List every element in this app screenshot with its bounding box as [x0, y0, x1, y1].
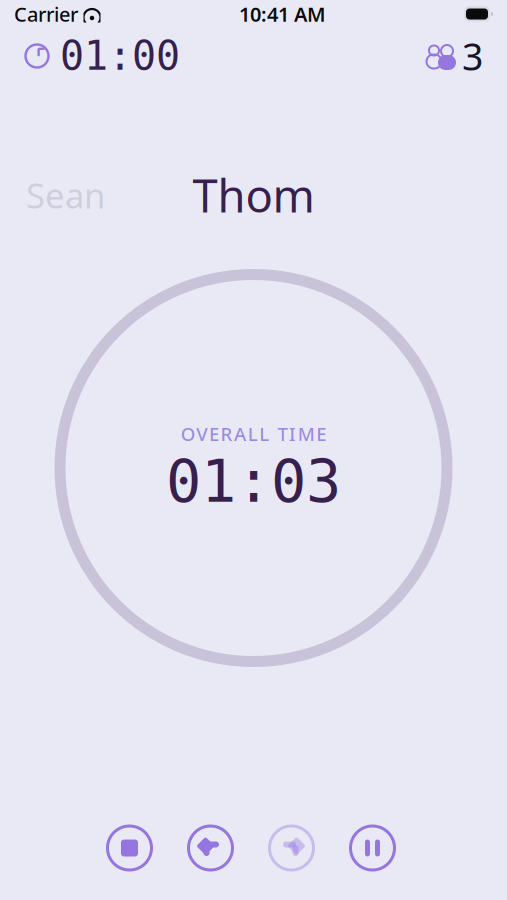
- staticText: 10:41 AM: [239, 1, 326, 27]
- button[interactable]: Previous: [186, 824, 234, 872]
- staticText: Sean: [26, 172, 105, 218]
- button[interactable]: Participants: [424, 31, 483, 81]
- staticText: 01:00: [60, 33, 180, 79]
- button[interactable]: Stop: [105, 824, 153, 872]
- staticText: Carrier: [14, 1, 78, 27]
- staticText: OVERALL TIME: [181, 421, 326, 446]
- button[interactable]: 01:00: [24, 33, 180, 79]
- staticText: Thom: [192, 165, 314, 225]
- staticText: 3: [462, 31, 483, 81]
- staticText: 01:03: [166, 448, 341, 515]
- button[interactable]: Pause: [348, 824, 396, 872]
- button[interactable]: Next: [267, 824, 315, 872]
